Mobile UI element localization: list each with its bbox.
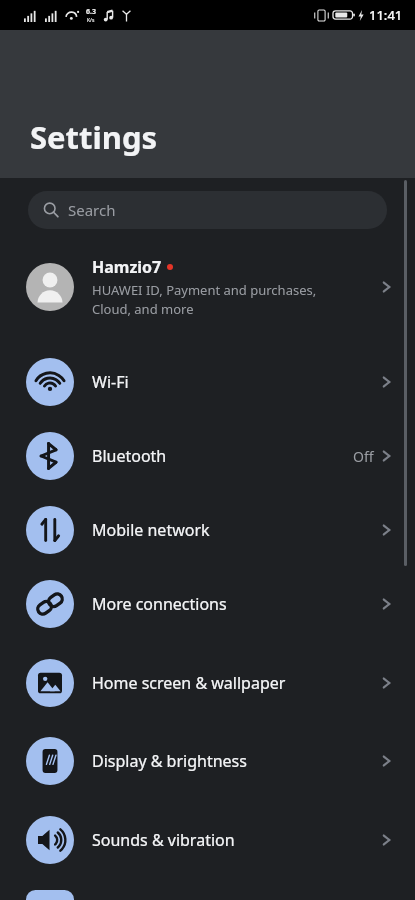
staticText: Display & brightness — [92, 750, 382, 772]
staticText: Home screen & wallpaper — [92, 672, 382, 694]
button[interactable]: Bluetooth — [0, 419, 415, 493]
staticText: HUAWEI ID, Payment and purchases, Cloud,… — [92, 281, 317, 318]
staticText: Bluetooth — [92, 445, 353, 467]
staticText: 6.3 — [86, 7, 96, 17]
staticText: Wi-Fi — [92, 371, 382, 393]
other: Mobile network — [26, 506, 74, 554]
staticText: K/s — [87, 17, 95, 24]
other: Bluetooth — [26, 432, 74, 480]
staticText: More connections — [92, 593, 382, 615]
other: Home screen and wallpaper — [26, 659, 74, 707]
staticText: Settings — [30, 116, 158, 158]
button[interactable]: Search — [28, 191, 387, 229]
staticText: Sounds & vibration — [92, 829, 382, 851]
other: More connections — [26, 580, 74, 628]
staticText: Off — [353, 447, 374, 466]
other: Sounds and vibration — [26, 816, 74, 864]
button[interactable]: Sounds and vibration — [0, 798, 415, 881]
button[interactable]: Hamzio7 — [0, 243, 415, 331]
staticText: Mobile network — [92, 519, 382, 541]
button[interactable]: Mobile network — [0, 493, 415, 567]
staticText: Search — [68, 200, 116, 220]
staticText: Hamzio7 — [92, 256, 162, 278]
other: Display and brightness — [26, 737, 74, 785]
button[interactable]: Display and brightness — [0, 724, 415, 798]
other: Wi-Fi — [26, 358, 74, 406]
staticText: 11:41 — [369, 6, 403, 24]
button[interactable]: More connections — [0, 567, 415, 641]
button[interactable]: Home screen and wallpaper — [0, 641, 415, 724]
button[interactable]: Wi-Fi — [0, 345, 415, 419]
